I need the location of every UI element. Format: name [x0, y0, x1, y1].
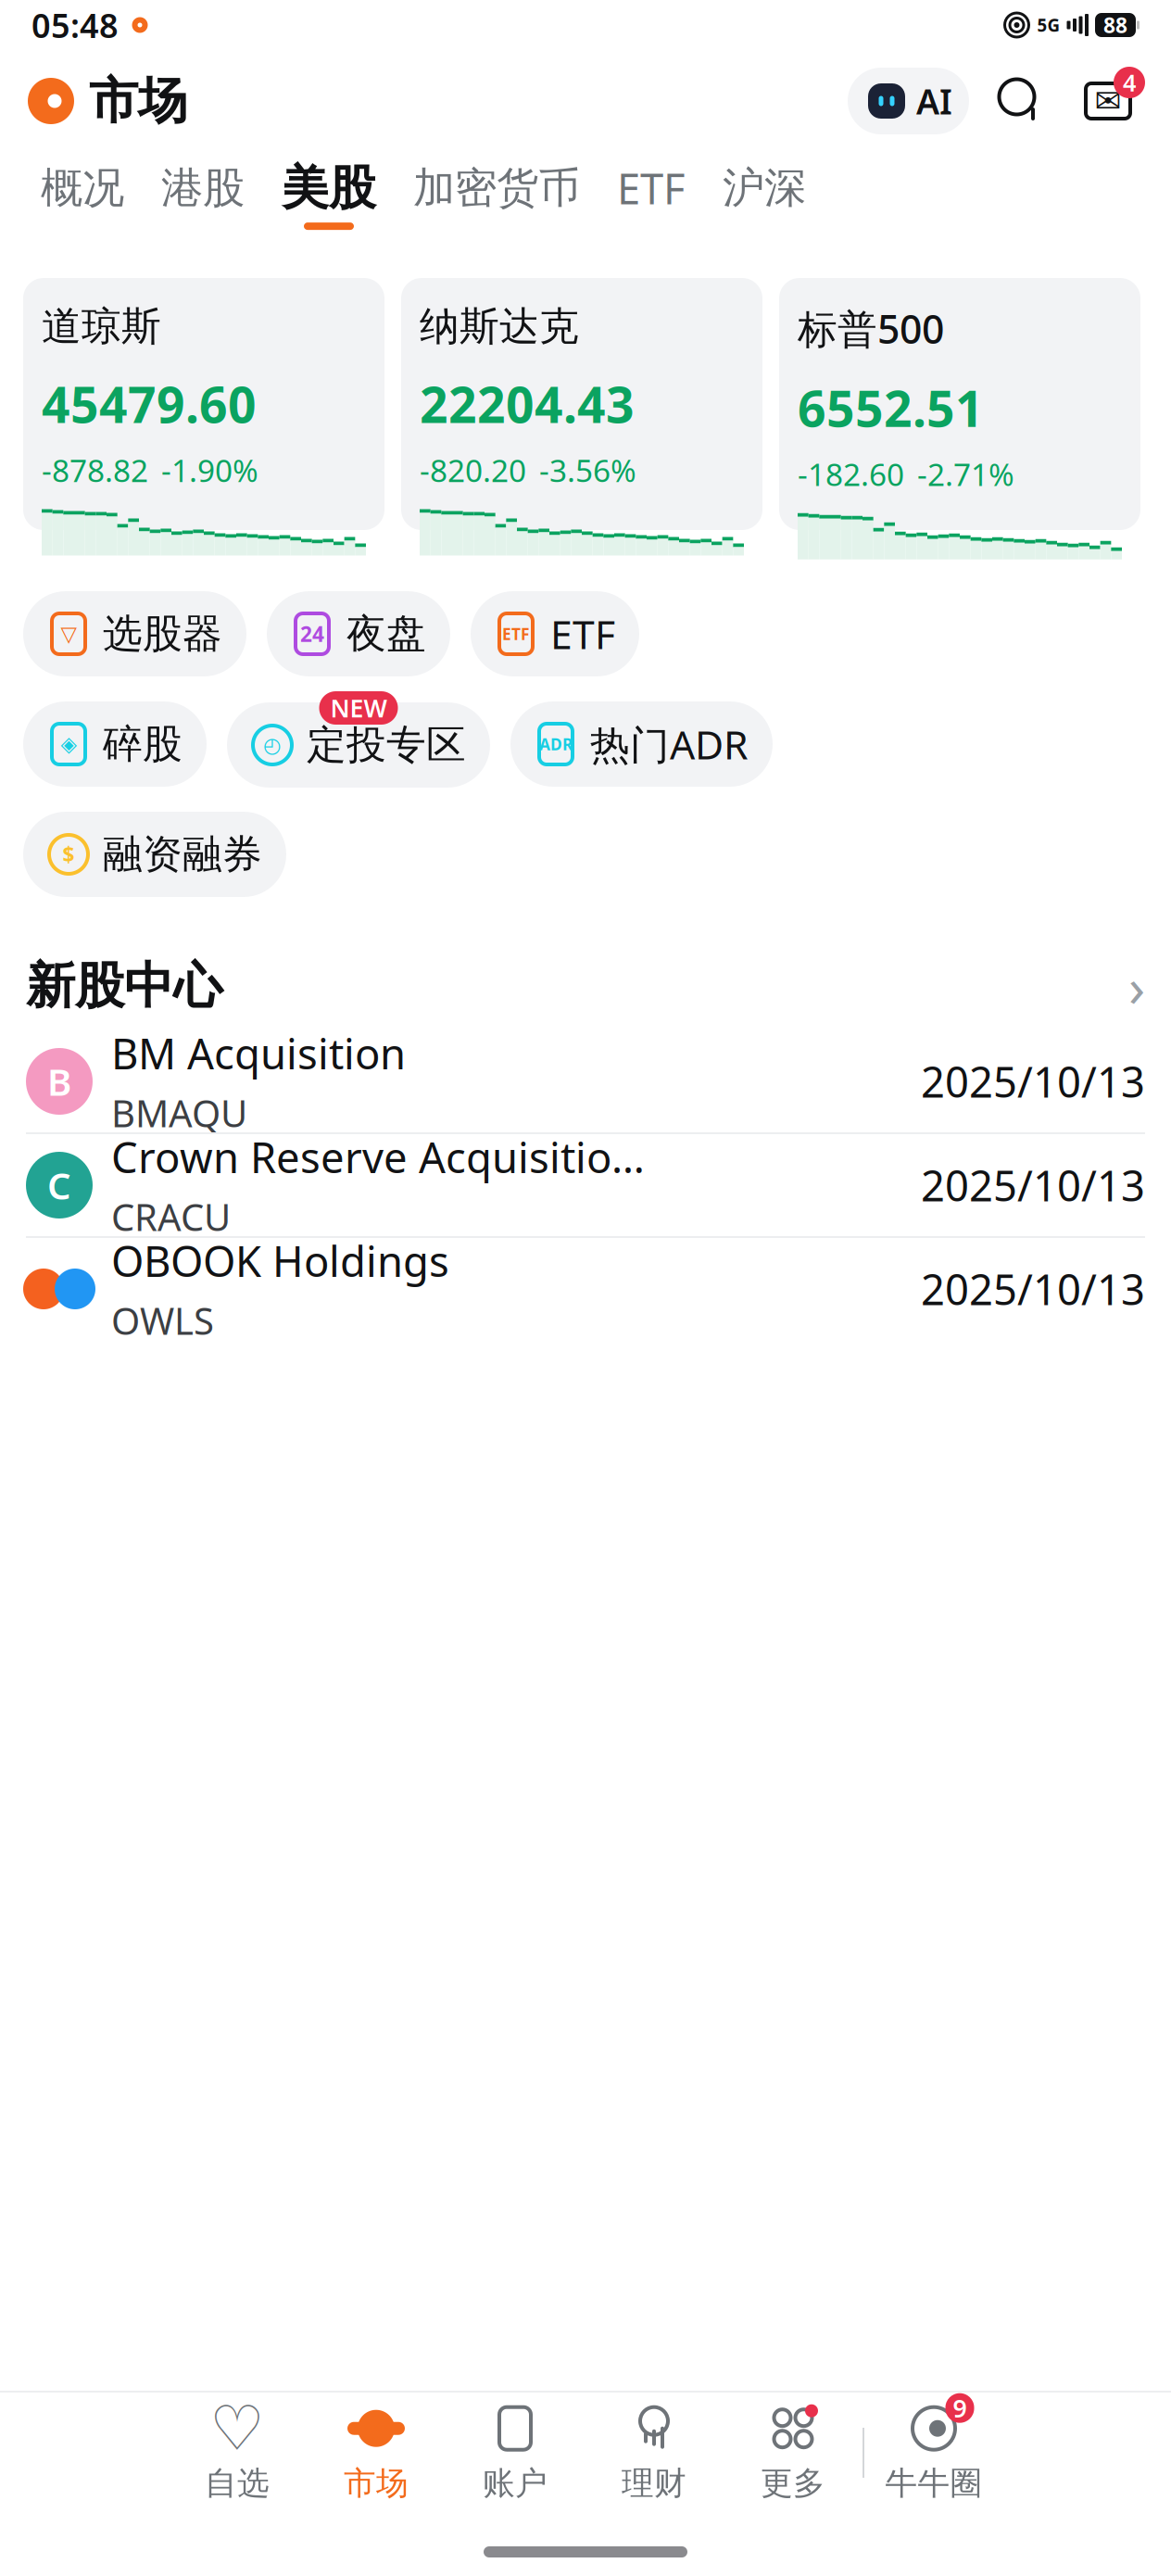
staticText: 夜盘	[346, 610, 426, 658]
staticText: 2025/10/13	[921, 1157, 1145, 1213]
staticText: ›	[1128, 950, 1145, 1022]
button[interactable]: AI	[848, 68, 969, 134]
staticText: 账户	[483, 2464, 548, 2503]
staticText: 22204.43	[420, 371, 635, 437]
staticText: OBOOK Holdings	[111, 1233, 449, 1288]
staticText: 碎股	[103, 720, 183, 768]
staticText: ETF	[502, 623, 530, 644]
staticText: -3.56%	[539, 450, 636, 491]
staticText: 自选	[205, 2464, 270, 2503]
staticText: CRACU	[111, 1192, 231, 1241]
staticText: ◈	[61, 732, 76, 756]
button[interactable]: 账户	[446, 2402, 585, 2504]
staticText: C	[47, 1160, 71, 1210]
staticText: NEW	[330, 692, 387, 724]
staticText: -182.60	[798, 454, 904, 495]
staticText: 99+	[953, 2359, 967, 2457]
staticText: 市场	[344, 2464, 409, 2503]
staticText: -1.90%	[161, 450, 258, 491]
staticText: ETF	[617, 160, 686, 216]
staticText: 港股	[161, 162, 245, 214]
staticText: 牛牛圈	[885, 2464, 982, 2503]
staticText: -820.20	[420, 450, 526, 491]
staticText: 纳斯达克	[420, 302, 579, 351]
staticText: 2025/10/13	[921, 1261, 1145, 1317]
staticText: ✉	[1095, 83, 1121, 119]
staticText: 道琼斯	[42, 302, 161, 351]
staticText: 沪深	[723, 162, 806, 214]
staticText: 4	[1123, 67, 1136, 98]
staticText: Crown Reserve Acquisitio…	[111, 1129, 645, 1185]
staticText: 新股中心	[26, 956, 222, 1016]
button[interactable]: 市场	[307, 2402, 446, 2504]
staticText: 5G	[1037, 14, 1060, 37]
button[interactable]: 沪深	[704, 152, 825, 237]
staticText: 24	[300, 620, 324, 648]
button[interactable]: ETF	[598, 152, 704, 237]
staticText: BM Acquisition	[111, 1025, 406, 1081]
staticText: ETF	[550, 608, 615, 660]
staticText: 美股	[282, 159, 376, 217]
button[interactable]: Messages	[1071, 66, 1145, 136]
button[interactable]: 加密货币	[395, 152, 598, 237]
button[interactable]: ETF	[471, 591, 639, 676]
staticText: 6552.51	[798, 375, 984, 441]
button[interactable]: ◈	[23, 701, 207, 787]
staticText: 选股器	[103, 610, 222, 658]
staticText: OWLS	[111, 1296, 214, 1345]
button[interactable]: ▽	[23, 591, 246, 676]
button[interactable]: C	[0, 1134, 1171, 1236]
staticText: BMAQU	[111, 1088, 247, 1138]
button[interactable]: 24	[267, 591, 450, 676]
button[interactable]: 概况	[22, 152, 143, 237]
button[interactable]: Search	[984, 68, 1058, 134]
staticText: 45479.60	[42, 371, 257, 437]
staticText: 05:48	[31, 3, 119, 47]
button[interactable]: 新股中心	[0, 941, 1171, 1030]
staticText: 热门ADR	[590, 718, 749, 770]
staticText: 定投专区	[307, 721, 466, 769]
staticText: 88	[1103, 11, 1127, 39]
button[interactable]: 标普500	[779, 278, 1140, 530]
button[interactable]: 道琼斯	[23, 278, 384, 530]
staticText: 融资融券	[103, 830, 262, 879]
button[interactable]: B	[0, 1030, 1171, 1132]
staticText: 概况	[41, 162, 124, 214]
staticText: $	[63, 840, 75, 868]
button[interactable]: 纳斯达克	[401, 278, 762, 530]
staticText: -878.82	[42, 450, 148, 491]
staticText: 加密货币	[413, 162, 580, 214]
staticText: AI	[916, 78, 952, 124]
button[interactable]: ♡	[168, 2402, 307, 2504]
staticText: 2025/10/13	[921, 1053, 1145, 1109]
staticText: ADR	[539, 733, 573, 755]
button[interactable]: 更多	[724, 2402, 863, 2504]
staticText: 更多	[761, 2464, 825, 2503]
staticText: 市场	[89, 71, 187, 131]
staticText: B	[47, 1057, 71, 1106]
button[interactable]: 美股	[263, 152, 395, 237]
staticText: ◴	[263, 733, 282, 757]
button[interactable]: 理财	[585, 2402, 724, 2504]
button[interactable]: $	[23, 812, 286, 897]
staticText: ▽	[61, 622, 76, 646]
button[interactable]: ◴	[227, 689, 490, 799]
staticText: 理财	[622, 2464, 686, 2503]
staticText: ♡	[209, 2393, 265, 2464]
staticText: -2.71%	[917, 454, 1014, 495]
staticText: 标普500	[798, 302, 944, 355]
button[interactable]: 港股	[143, 152, 263, 237]
button[interactable]: OBOOK Holdings	[0, 1238, 1171, 1340]
button[interactable]: ADR	[510, 701, 773, 787]
button[interactable]: 99+	[864, 2402, 1003, 2504]
